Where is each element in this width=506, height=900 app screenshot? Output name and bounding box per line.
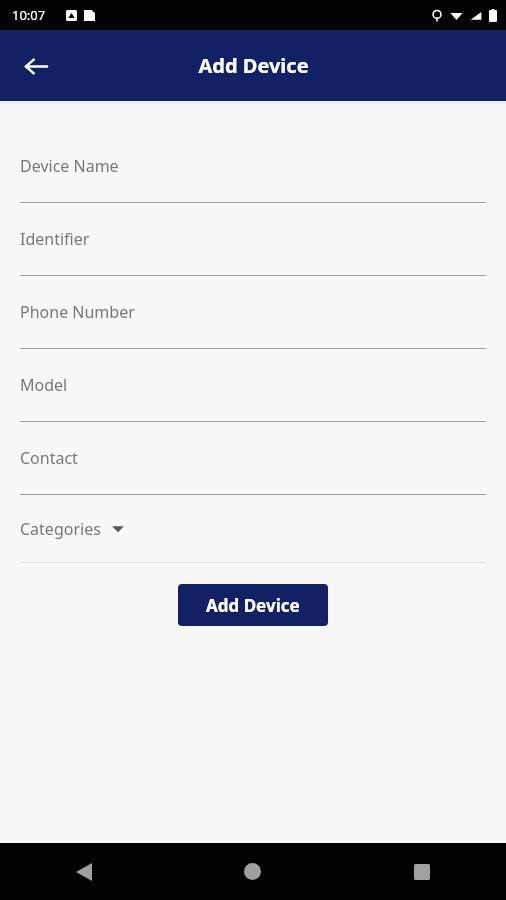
staticText: Identifier: [20, 228, 90, 250]
button[interactable]: Back: [12, 42, 60, 90]
staticText: Model: [20, 374, 68, 396]
staticText: Phone Number: [20, 301, 135, 323]
staticText: Categories: [20, 518, 101, 540]
button[interactable]: Back: [0, 843, 168, 900]
staticText: Contact: [20, 447, 78, 469]
staticText: Device Name: [20, 155, 119, 177]
staticText: 10:07: [12, 6, 46, 24]
button[interactable]: Phone Number: [0, 276, 506, 349]
button[interactable]: Categories: [0, 495, 506, 563]
staticText: Add Device: [198, 52, 309, 79]
button[interactable]: Contact: [0, 422, 506, 495]
button[interactable]: Identifier: [0, 203, 506, 276]
button[interactable]: Model: [0, 349, 506, 422]
staticText: Add Device: [206, 594, 300, 617]
button[interactable]: Home: [168, 843, 337, 900]
button[interactable]: Device Name: [0, 130, 506, 203]
button[interactable]: Add Device: [178, 584, 328, 626]
button[interactable]: Recent apps: [337, 843, 506, 900]
